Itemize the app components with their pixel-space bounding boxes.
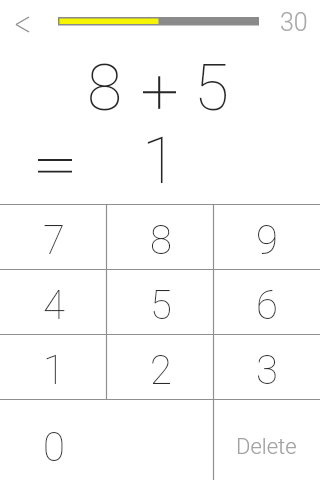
- button[interactable]: 4: [0, 269, 107, 334]
- button[interactable]: 6: [214, 269, 320, 334]
- staticText: 1: [142, 124, 178, 199]
- staticText: 5: [150, 282, 172, 329]
- staticText: 3: [256, 347, 278, 394]
- staticText: 7: [43, 217, 65, 264]
- staticText: 0: [43, 424, 65, 471]
- button[interactable]: 8: [107, 204, 214, 269]
- button[interactable]: 2: [107, 334, 214, 399]
- staticText: Delete: [236, 434, 297, 460]
- button[interactable]: 7: [0, 204, 107, 269]
- button[interactable]: 0: [0, 399, 213, 480]
- staticText: 8: [87, 51, 123, 126]
- staticText: 1: [43, 347, 65, 394]
- staticText: 6: [256, 282, 278, 329]
- button[interactable]: [8, 10, 36, 38]
- button[interactable]: 3: [214, 334, 320, 399]
- button[interactable]: 1: [0, 334, 107, 399]
- staticText: 8: [150, 217, 172, 264]
- staticText: 4: [43, 282, 65, 329]
- staticText: 9: [256, 217, 278, 264]
- button[interactable]: 9: [214, 204, 320, 269]
- button[interactable]: Delete: [213, 399, 320, 480]
- staticText: 30: [280, 8, 308, 37]
- button[interactable]: 5: [107, 269, 214, 334]
- staticText: 5: [194, 51, 230, 126]
- staticText: 2: [150, 347, 172, 394]
